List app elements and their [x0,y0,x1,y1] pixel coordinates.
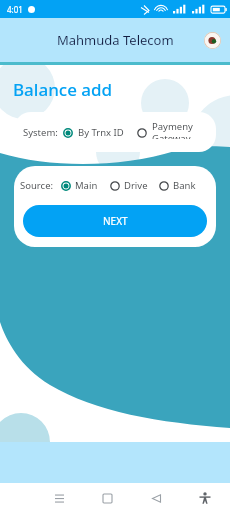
button[interactable]: Drive [110,179,148,192]
button[interactable]: Back [143,485,169,511]
staticText: Main [75,179,98,192]
button[interactable]: Home [94,485,120,511]
button[interactable]: Paymeny Gateway [137,123,193,142]
button[interactable]: Accessibility [192,485,218,511]
button[interactable]: Profile [204,32,221,49]
staticText: NEXT [103,214,128,228]
staticText: System: [23,126,58,139]
staticText: Source: [20,179,54,192]
staticText: Paymeny Gateway [152,123,193,139]
staticText: By Trnx ID [78,126,124,139]
staticText: Mahmuda Telecom [57,31,174,49]
staticText: 4:01 [7,4,23,15]
button[interactable]: By Trnx ID [63,126,124,139]
staticText: Bank [173,179,196,192]
button[interactable]: Main [61,179,98,192]
button[interactable]: Bank [159,179,196,192]
staticText: Drive [124,179,148,192]
button[interactable]: Recents [46,485,72,511]
button[interactable]: NEXT [23,205,207,237]
staticText: Balance add [13,78,113,101]
